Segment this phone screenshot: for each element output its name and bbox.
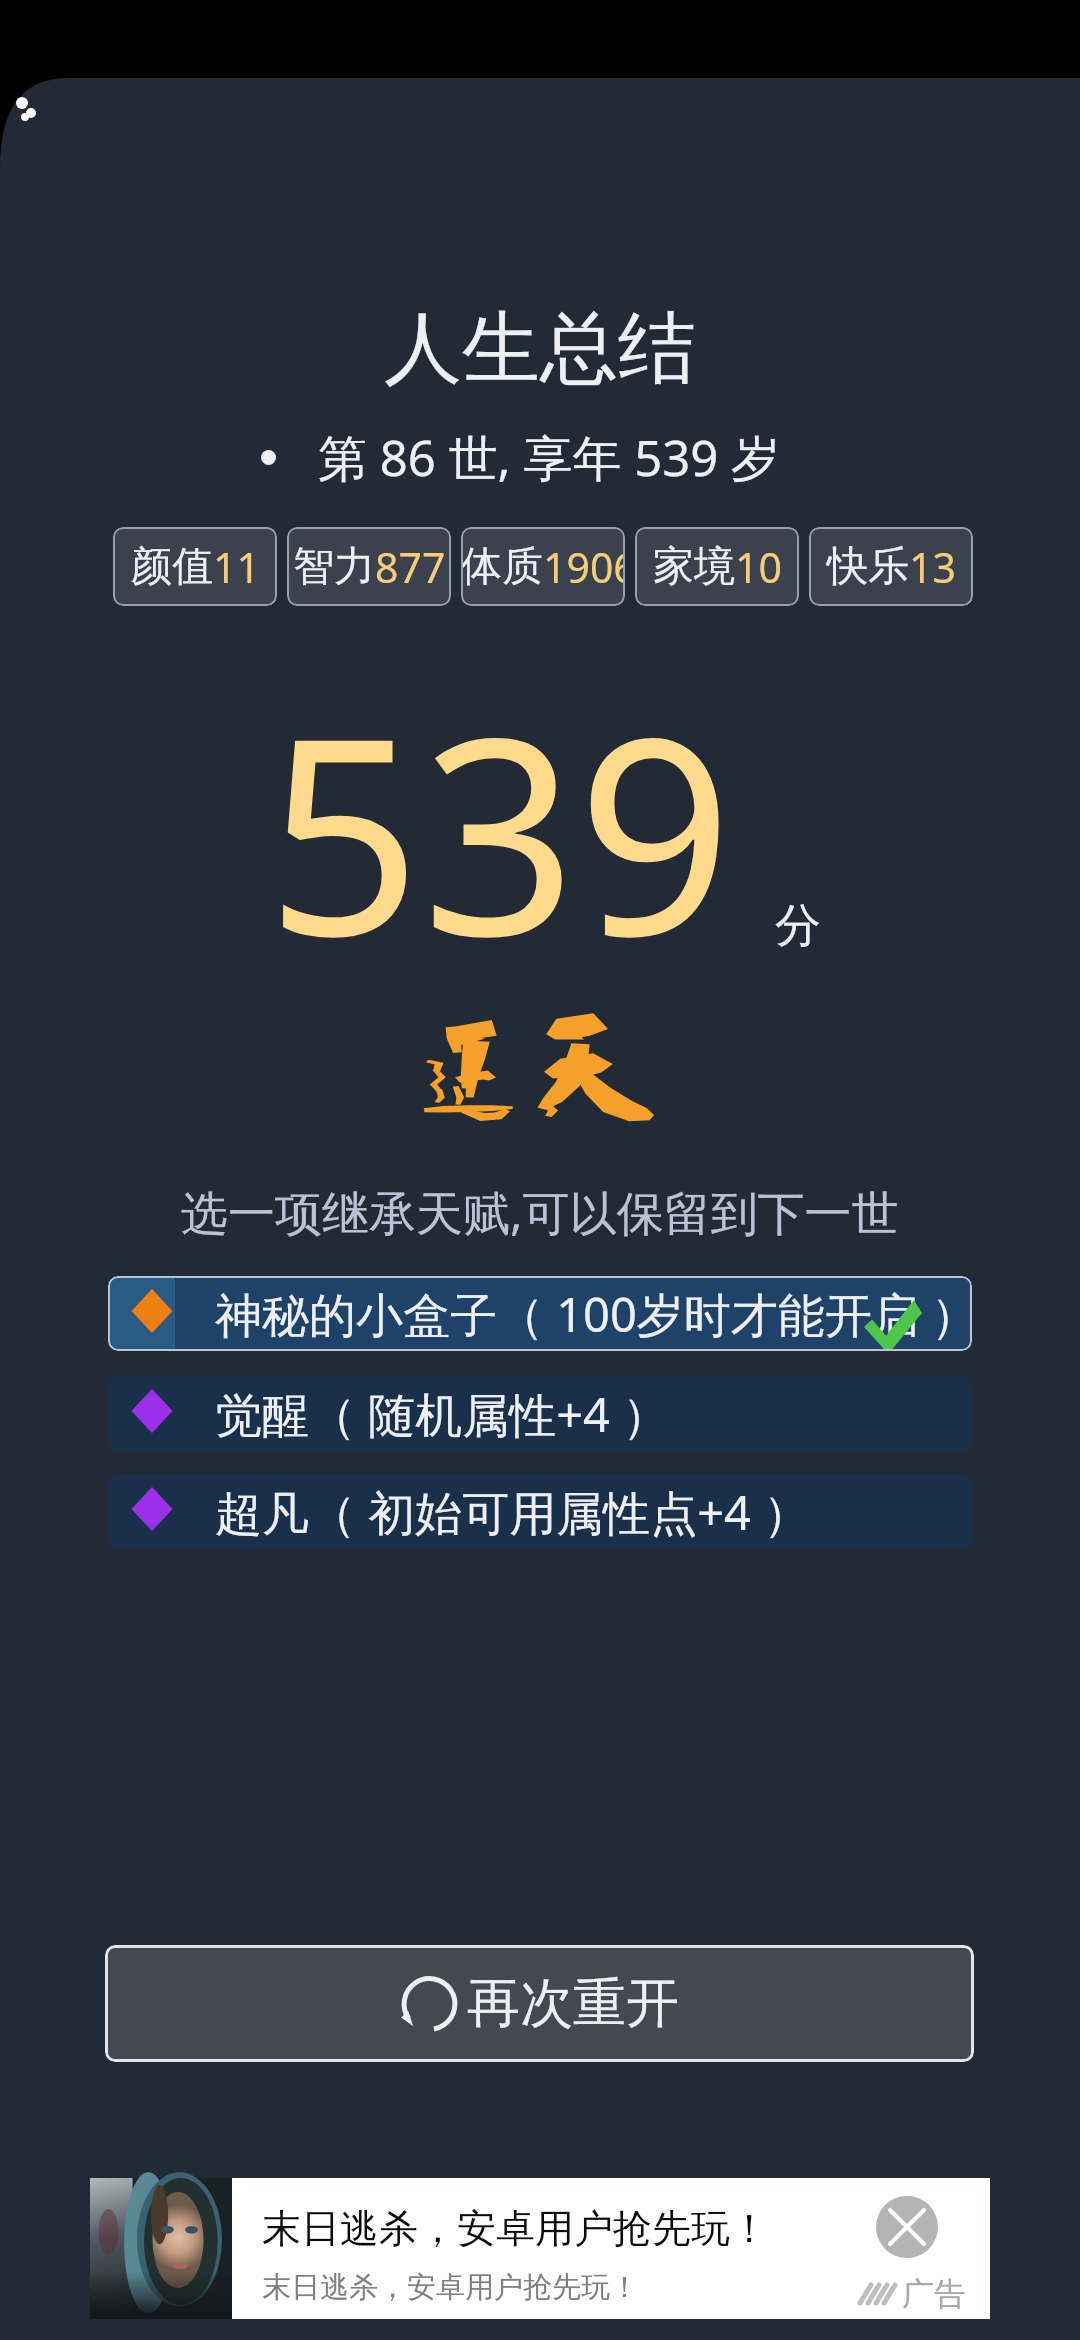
staticText: 觉醒（ 随机属性+4 ） (215, 1382, 670, 1446)
staticText: 分 (775, 897, 821, 955)
staticText: 1906 (543, 539, 625, 595)
staticText: 人生总结 (384, 300, 696, 398)
staticText: 超凡（ 初始可用属性点+4 ） (215, 1480, 811, 1544)
staticText: 再次重开 (467, 1970, 679, 2037)
button[interactable]: 体质 (461, 527, 625, 606)
staticText: 颜值 (131, 541, 213, 593)
button[interactable]: 超凡（ 初始可用属性点+4 ） (108, 1474, 972, 1549)
staticText: 智力 (293, 541, 375, 593)
staticText: 快乐 (827, 541, 909, 593)
staticText: 10 (735, 539, 782, 595)
staticText: 877 (375, 539, 446, 595)
button[interactable]: 末日逃杀，安卓用户抢先玩！ (90, 2178, 990, 2319)
staticText: 13 (909, 539, 956, 595)
button[interactable]: Close ad (876, 2196, 938, 2258)
staticText: 539 (266, 644, 733, 1014)
button[interactable]: 颜值 (113, 527, 277, 606)
staticText: 神秘的小盒子（ 100岁时才能开启 ） (215, 1282, 972, 1346)
button[interactable]: 再次重开 (105, 1945, 974, 2062)
staticText: 选一项继承天赋,可以保留到下一世 (181, 1180, 899, 1244)
staticText: 第 86 世, 享年 539 岁 (318, 424, 780, 491)
button[interactable]: 快乐 (809, 527, 973, 606)
staticText: 广告 (902, 2274, 966, 2314)
button[interactable]: 神秘的小盒子（ 100岁时才能开启 ） (108, 1276, 972, 1351)
staticText: 11 (213, 539, 260, 595)
staticText: 家境 (653, 541, 735, 593)
staticText: 体质 (461, 541, 543, 593)
staticText: 末日逃杀，安卓用户抢先玩！ (262, 2204, 769, 2253)
staticText: 末日逃杀，安卓用户抢先玩！ (262, 2269, 639, 2306)
button[interactable]: 觉醒（ 随机属性+4 ） (108, 1376, 972, 1451)
button[interactable]: 智力 (287, 527, 451, 606)
button[interactable]: 家境 (635, 527, 799, 606)
